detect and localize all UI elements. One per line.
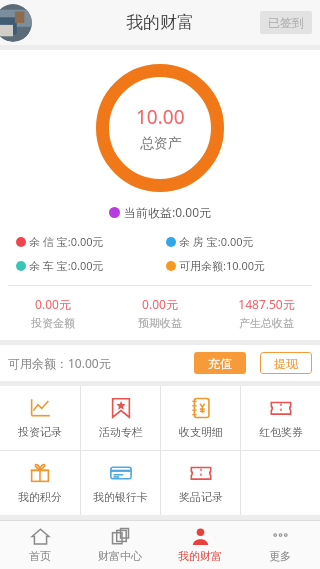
staticText: 余 车 宝:0.00元 (29, 258, 104, 273)
staticText: 提现 (274, 356, 298, 371)
staticText: 当前收益:0.00元 (124, 204, 212, 220)
button[interactable]: Profile avatar (0, 4, 32, 42)
button[interactable]: 我的财富 (160, 521, 240, 569)
button[interactable]: 收支明细 (161, 386, 240, 450)
staticText: 投资金额 (31, 316, 75, 330)
staticText: 更多 (269, 549, 291, 563)
button[interactable]: 财富中心 (80, 521, 160, 569)
staticText: 我的银行卡 (93, 490, 148, 504)
staticText: 投资记录 (18, 425, 62, 439)
staticText: 余 信 宝:0.00元 (29, 234, 104, 249)
staticText: 收支明细 (179, 425, 223, 439)
staticText: 总资产 (140, 135, 182, 153)
staticText: 红包奖券 (259, 425, 303, 439)
button[interactable]: 投资记录 (0, 386, 80, 450)
button[interactable]: 更多 (240, 521, 320, 569)
staticText: 首页 (29, 549, 51, 563)
staticText: 财富中心 (98, 549, 142, 563)
staticText: 已签到 (268, 15, 304, 30)
staticText: 我的财富 (126, 12, 194, 33)
staticText: 余 房 宝:0.00元 (179, 234, 254, 249)
staticText: 我的财富 (178, 549, 222, 563)
staticText: 活动专栏 (99, 425, 143, 439)
button[interactable]: 首页 (0, 521, 80, 569)
staticText: 0.00元 (142, 296, 178, 312)
button[interactable]: 红包奖券 (241, 386, 320, 450)
staticText: 10.00 (136, 104, 185, 130)
button[interactable]: 我的积分 (0, 451, 80, 515)
button[interactable]: 提现 (260, 352, 312, 374)
staticText: 0.00元 (35, 296, 71, 312)
staticText: 预期收益 (138, 316, 182, 330)
staticText: 奖品记录 (179, 490, 223, 504)
button[interactable]: 我的银行卡 (81, 451, 160, 515)
staticText: 产生总收益 (239, 316, 294, 330)
staticText: 我的积分 (18, 490, 62, 504)
button[interactable]: 充值 (194, 352, 246, 374)
button[interactable]: 已签到 (260, 11, 312, 34)
staticText: 可用余额:10.00元 (179, 258, 266, 273)
button[interactable]: 奖品记录 (161, 451, 240, 515)
staticText: 可用余额：10.00元 (8, 355, 111, 371)
button[interactable]: 活动专栏 (81, 386, 160, 450)
staticText: 1487.50元 (238, 296, 295, 312)
staticText: 充值 (208, 356, 232, 371)
